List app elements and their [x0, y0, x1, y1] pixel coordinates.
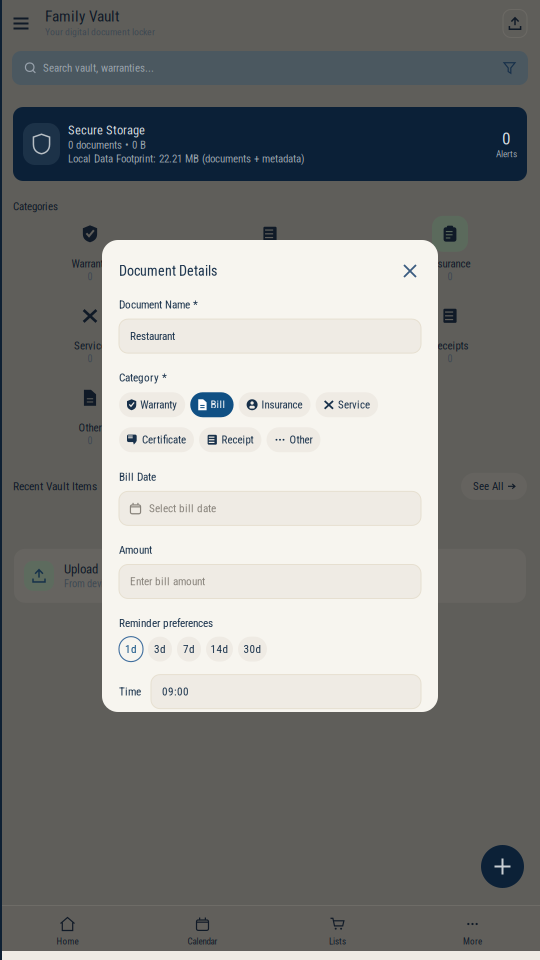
staticText: 0 [87, 271, 92, 283]
button[interactable]: Certificate [180, 298, 360, 380]
staticText: 3d [154, 643, 166, 656]
button[interactable]: Service [0, 298, 180, 380]
staticText: Local Data Footprint: 22.21 MB (document… [68, 152, 304, 165]
button[interactable]: Insurance [360, 216, 540, 298]
staticText: Family Vault [45, 7, 120, 25]
staticText: 0 [87, 435, 92, 447]
staticText: Receipts [431, 339, 468, 352]
staticText: 0 [267, 353, 272, 365]
staticText: Service [74, 339, 106, 352]
staticText: Document Details [119, 263, 217, 279]
staticText: Recent Vault Items [13, 480, 97, 493]
staticText: Certificate [142, 433, 186, 446]
button[interactable]: Service [316, 392, 378, 417]
staticText: 7d [183, 643, 195, 656]
staticText: 30d [243, 643, 261, 656]
button[interactable]: Select bill date [119, 491, 421, 525]
button[interactable]: 7d [177, 637, 201, 662]
button[interactable]: Insurance [239, 392, 311, 417]
staticText: Search vault, warranties... [43, 62, 154, 74]
staticText: Reminder preferences [119, 616, 213, 630]
button[interactable]: See All [461, 473, 527, 500]
button[interactable]: Lists [270, 905, 405, 951]
button[interactable]: 3d [148, 637, 172, 662]
button[interactable]: Other [0, 380, 180, 462]
staticText: Other [289, 433, 312, 446]
staticText: 0 [447, 353, 452, 365]
staticText: Document Name * [119, 298, 198, 311]
staticText: Insurance [429, 257, 470, 270]
staticText: See All [473, 480, 504, 493]
staticText: Bill [211, 398, 226, 411]
button[interactable]: 14d [206, 637, 233, 662]
button[interactable]: Warranty [0, 216, 180, 298]
staticText: 0 documents • 0 B [68, 138, 146, 151]
button[interactable]: Calendar [135, 905, 270, 951]
button[interactable]: Upload [14, 549, 526, 603]
staticText: Category * [119, 371, 167, 384]
staticText: Service [338, 398, 370, 411]
button[interactable]: Bills [180, 216, 360, 298]
staticText: Warranty [71, 257, 108, 270]
staticText: Categories [13, 200, 58, 213]
staticText: Calendar [187, 936, 217, 947]
button[interactable]: 30d [238, 637, 267, 662]
button[interactable]: Receipt [199, 427, 261, 452]
staticText: Lists [329, 936, 346, 947]
button[interactable]: Menu [0, 1, 42, 45]
staticText: 0 [502, 128, 511, 149]
staticText: Other [78, 421, 101, 434]
staticText: Receipt [221, 433, 253, 446]
button[interactable]: More [405, 905, 540, 951]
staticText: Restaurant [130, 330, 175, 343]
button[interactable]: Add document [481, 845, 524, 888]
staticText: Insurance [262, 398, 303, 411]
staticText: Enter bill amount [130, 575, 205, 588]
staticText: More [463, 936, 482, 947]
staticText: 14d [210, 643, 228, 656]
staticText: Warranty [140, 398, 177, 411]
button[interactable]: Warranty [119, 392, 185, 417]
staticText: Home [56, 936, 78, 947]
button[interactable]: 1d [119, 637, 143, 662]
button[interactable]: Close [399, 260, 421, 282]
staticText: Your digital document locker [45, 26, 155, 38]
button[interactable]: Certificate [119, 427, 194, 452]
staticText: Select bill date [149, 502, 216, 515]
staticText: Secure Storage [68, 123, 145, 137]
staticText: 1d [125, 643, 137, 656]
staticText: 09:00 [162, 685, 189, 698]
staticText: Bill Date [119, 470, 156, 483]
staticText: Alerts [496, 149, 517, 160]
staticText: Amount [119, 543, 152, 556]
staticText: Upload [64, 562, 98, 577]
button[interactable]: Other [266, 427, 320, 452]
staticText: 0 [87, 353, 92, 365]
staticText: From device [64, 578, 113, 590]
staticText: 0 [447, 271, 452, 283]
button[interactable]: Receipts [360, 298, 540, 380]
button[interactable]: Share [495, 1, 535, 45]
staticText: Time [119, 685, 141, 698]
button[interactable]: Bill [190, 392, 234, 417]
button[interactable]: Home [0, 905, 135, 951]
